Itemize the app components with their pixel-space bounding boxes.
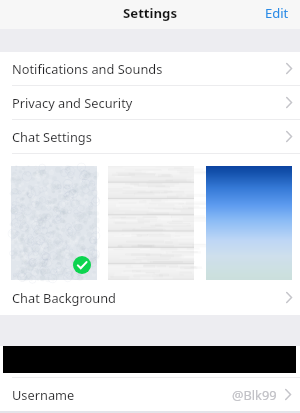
button[interactable]: Privacy and Security [0, 86, 300, 119]
staticText: Edit [265, 4, 289, 22]
button[interactable]: Chat Background [0, 280, 300, 315]
button[interactable]: Edit [255, 0, 300, 26]
staticText: Chat Background [12, 289, 116, 306]
staticText: Notifications and Sounds [12, 60, 163, 77]
staticText: Chat Settings [12, 128, 92, 145]
staticText: Settings [123, 4, 178, 22]
button[interactable]: Dotted background, selected [11, 166, 97, 280]
button[interactable]: Wood background [108, 166, 194, 280]
button[interactable]: Sky background [206, 166, 292, 280]
button[interactable]: Chat Settings [0, 120, 300, 153]
staticText: Privacy and Security [12, 94, 133, 111]
staticText: Username [12, 386, 75, 403]
button[interactable]: Notifications and Sounds [0, 52, 300, 85]
staticText: @Blk99 [232, 386, 277, 403]
button[interactable]: Username [0, 378, 300, 411]
